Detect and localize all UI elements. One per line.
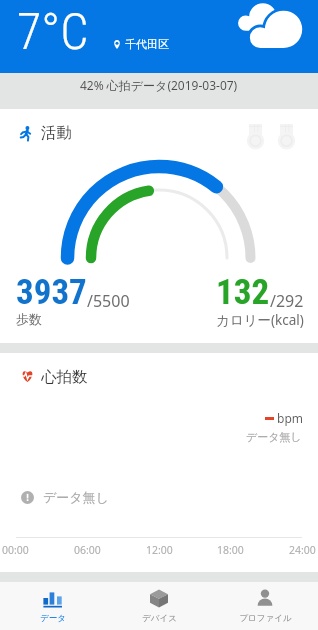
staticText: 00:00	[2, 543, 29, 557]
staticText: 12:00	[146, 543, 173, 557]
staticText: 千代田区	[125, 37, 169, 51]
staticText: 7°C	[17, 3, 89, 62]
staticText: 歩数	[16, 311, 42, 327]
staticText: データ無し	[246, 430, 302, 444]
staticText: カロリー(kcal)	[216, 311, 304, 329]
staticText: 18:00	[217, 543, 244, 557]
staticText: プロファイル	[239, 613, 292, 624]
staticText: 42% 心拍データ(2019-03-07)	[80, 77, 238, 93]
button[interactable]: Devices tab	[106, 582, 212, 630]
staticText: /292	[270, 290, 304, 312]
staticText: 3937	[16, 272, 87, 313]
button[interactable]: Profile tab	[212, 582, 318, 630]
staticText: /5500	[87, 290, 130, 312]
staticText: 活動	[41, 123, 72, 143]
staticText: 132	[216, 272, 270, 313]
staticText: データ無し	[43, 489, 109, 505]
staticText: bpm	[277, 410, 303, 426]
staticText: データ	[40, 613, 66, 624]
staticText: 心拍数	[41, 367, 88, 387]
button[interactable]: Data tab	[0, 582, 106, 630]
staticText: デバイス	[142, 613, 177, 624]
staticText: 24:00	[289, 543, 316, 557]
staticText: 06:00	[74, 543, 101, 557]
